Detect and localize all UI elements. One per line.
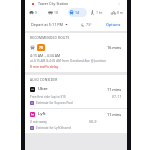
staticText: Estimate for Express Pool xyxy=(36,101,73,105)
staticText: Uber xyxy=(38,86,48,92)
staticText: Options xyxy=(106,22,121,27)
staticText: 11 mins xyxy=(107,112,122,117)
button[interactable]: 14 mins xyxy=(68,8,87,17)
staticText: Estimate for Lyft Shared xyxy=(36,126,71,130)
staticText: Depart at 5:11 PM xyxy=(31,22,64,27)
button[interactable]: Lyft xyxy=(25,109,127,133)
staticText: 16 mins xyxy=(107,45,122,50)
staticText: 73° xyxy=(86,22,92,27)
button[interactable]: Uber xyxy=(25,84,127,108)
staticText: 9 mins xyxy=(35,10,44,15)
button[interactable]: 79 xyxy=(25,42,127,72)
staticText: $8–9 xyxy=(89,119,97,124)
staticText: 4:15 AM – 4:34 AM xyxy=(30,53,61,58)
staticText: Free first ride (up to $15 with code GMA… xyxy=(30,95,71,99)
staticText: 79 xyxy=(39,45,43,50)
staticText: 8 m xyxy=(117,10,123,15)
staticText: 8 min traffic delay xyxy=(30,64,59,68)
button[interactable]: 1 hr 21 xyxy=(89,8,108,17)
staticText: 1 hr 21 xyxy=(96,10,107,15)
button[interactable]: 9 mins xyxy=(28,8,45,17)
staticText: RECOMMENDED ROUTE xyxy=(30,36,70,40)
button[interactable]: Depart at 5:11 PM xyxy=(30,21,69,28)
staticText: 3 min away xyxy=(30,120,47,124)
button[interactable]: Tower City Station xyxy=(25,0,127,7)
staticText: ALSO CONSIDER xyxy=(30,78,58,82)
staticText: Lyft xyxy=(38,111,46,117)
staticText: 11 mins xyxy=(107,87,122,92)
button[interactable]: 18 mins xyxy=(47,8,66,17)
staticText: Tower City Station xyxy=(38,1,69,6)
staticText: 14 mins xyxy=(75,10,86,15)
button[interactable]: 8 m xyxy=(110,8,124,17)
staticText: 18 mins xyxy=(54,10,65,15)
button[interactable]: Options xyxy=(105,21,122,28)
staticText: $7–11 xyxy=(112,94,122,99)
staticText: at 4:15 AM & 4:35 AM from Cleveland Ave … xyxy=(30,59,107,63)
